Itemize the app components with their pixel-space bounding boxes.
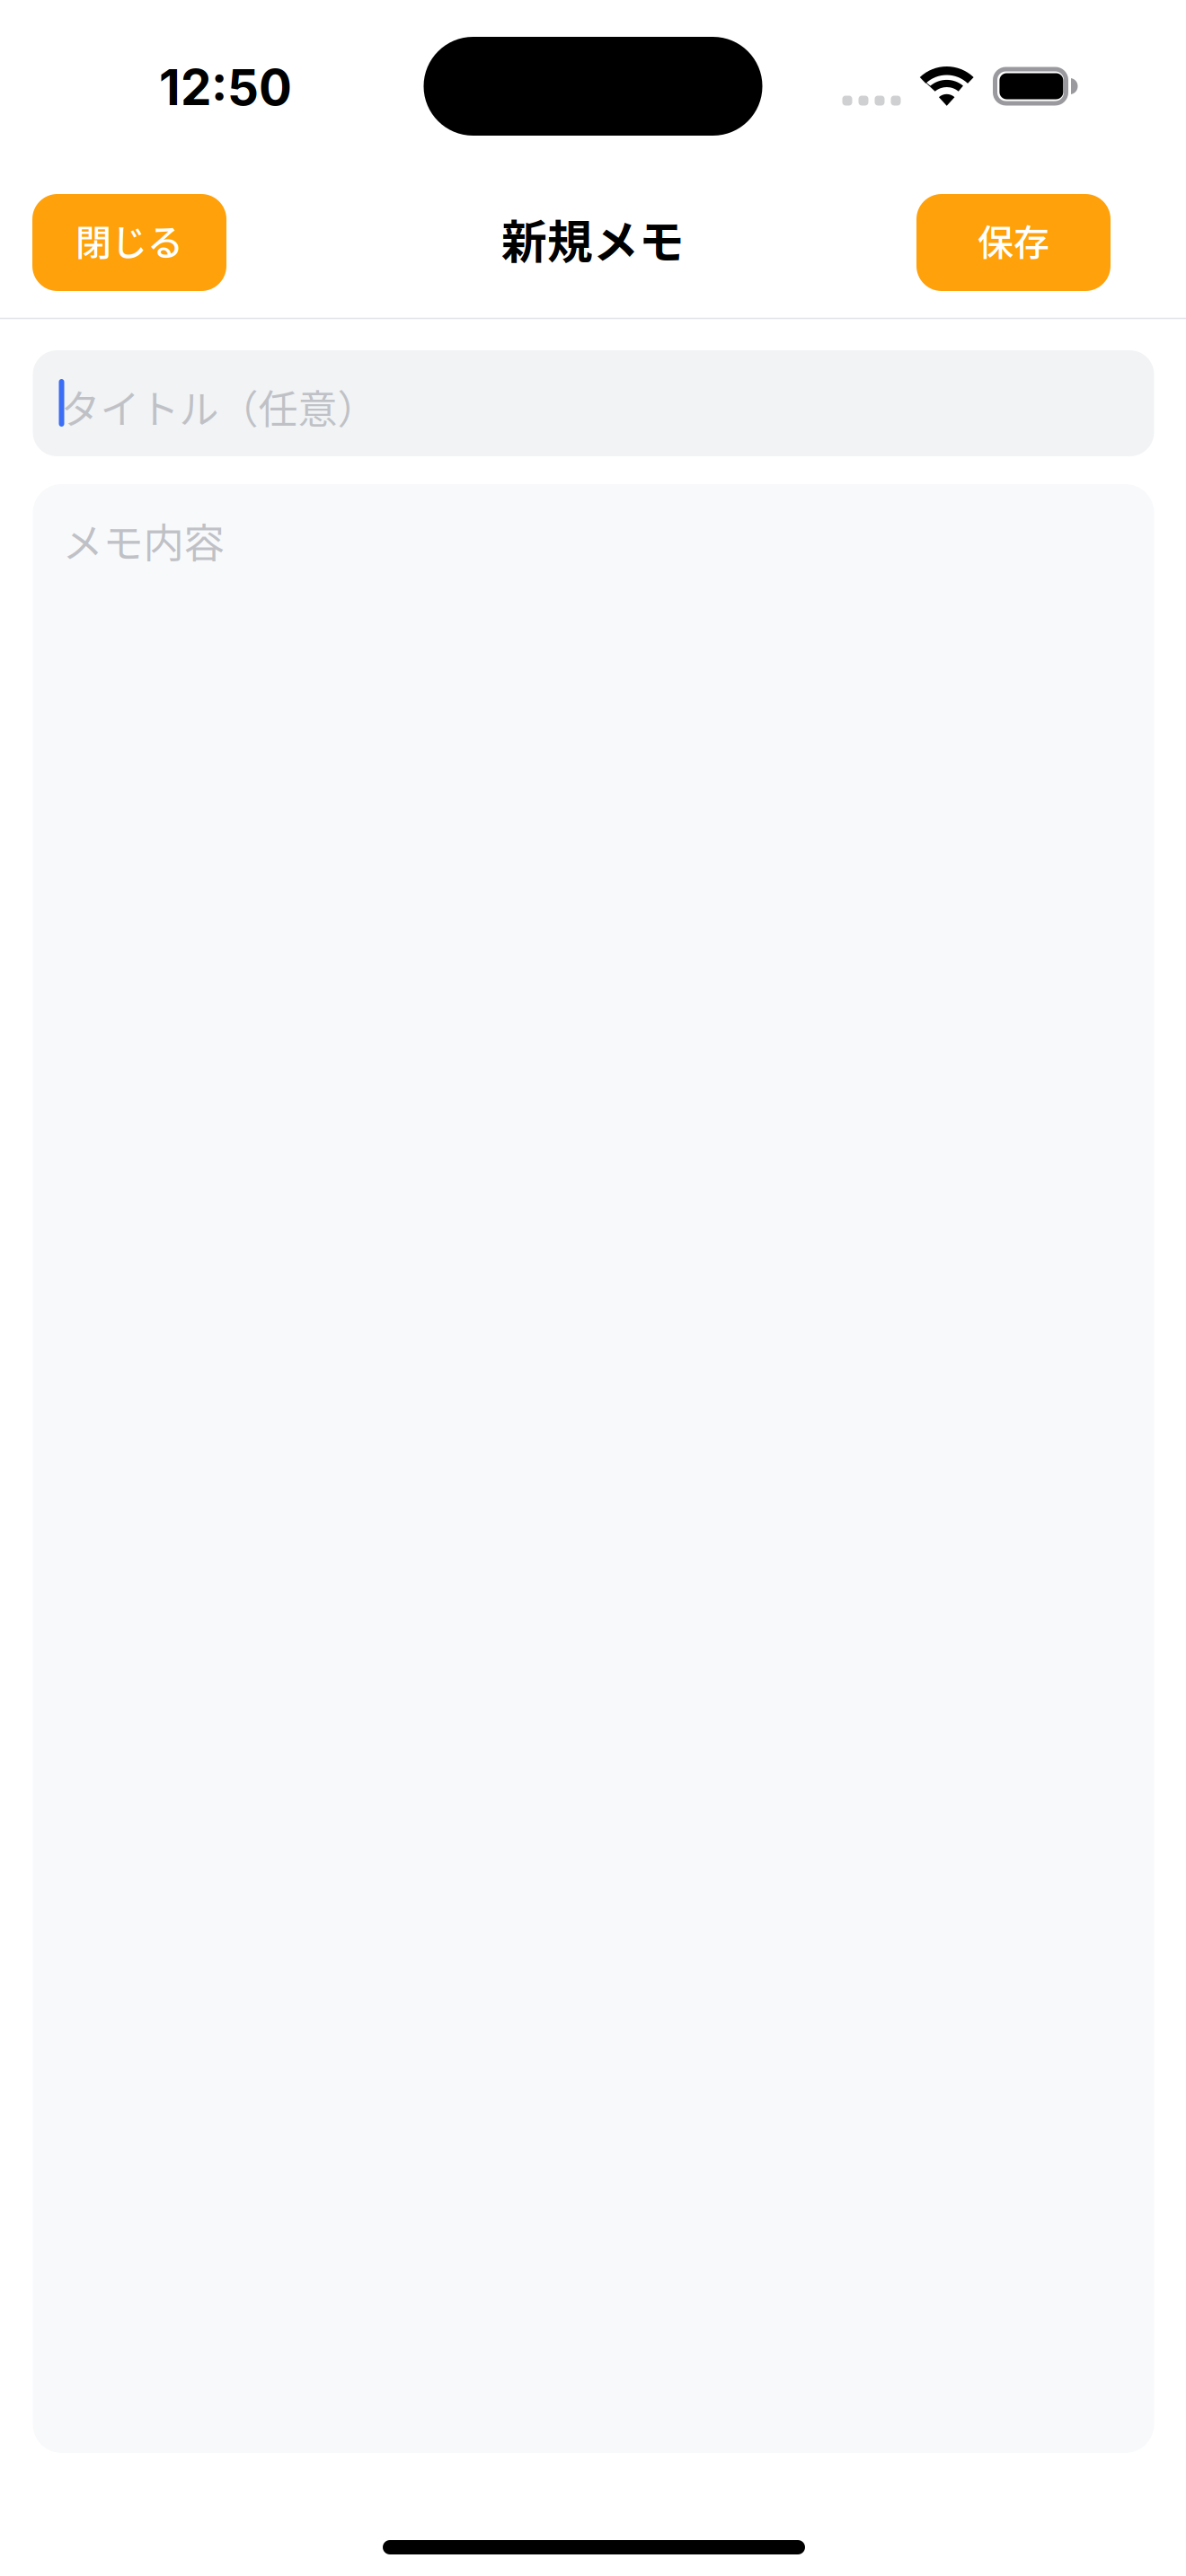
button[interactable]: 保存 <box>916 194 1111 291</box>
staticText: メモ内容 <box>62 511 224 570</box>
navigationBar: 新規メモ <box>0 162 1186 320</box>
staticText: タイトル（任意） <box>61 378 377 435</box>
textField[interactable]: タイトル（任意） <box>33 350 1154 456</box>
button[interactable]: 閉じる <box>32 194 226 291</box>
staticText: 保存 <box>978 214 1049 266</box>
staticText: 12:50 <box>159 57 292 117</box>
staticText: 閉じる <box>75 214 183 266</box>
staticText: 新規メモ <box>501 206 685 272</box>
